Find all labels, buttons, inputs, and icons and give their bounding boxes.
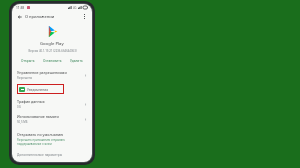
staticText: Уведомления	[27, 88, 49, 92]
button[interactable]: Остановить	[40, 58, 65, 64]
button[interactable]: Трафик данных	[12, 98, 92, 110]
staticText: Разрешить приложению открывать поддержив…	[17, 138, 87, 146]
button[interactable]: Ещё	[81, 13, 88, 20]
staticText: Остановить	[43, 59, 62, 63]
button[interactable]: Управление разрешениями	[12, 69, 92, 81]
staticText: Удалить	[70, 59, 83, 63]
button[interactable]: Использование памяти	[12, 113, 92, 125]
staticText: Разрешено	[17, 76, 33, 80]
staticText: Использование памяти	[17, 114, 59, 119]
staticText: Трафик данных	[17, 99, 45, 104]
staticText: 0 Б	[17, 105, 22, 109]
staticText: О приложении	[25, 14, 55, 19]
staticText: 50,5 МБ	[17, 120, 28, 124]
button[interactable]: Открыть	[18, 58, 38, 64]
staticText: Google Play	[40, 41, 64, 47]
button[interactable]: Удалить	[67, 58, 86, 64]
staticText: Открывать по умолчанию	[17, 132, 64, 137]
staticText: Дополнительные параметры	[17, 153, 63, 157]
button[interactable]: Уведомления	[17, 84, 64, 94]
staticText: 11:38	[16, 6, 25, 10]
staticText: Версия 40.1.19-21 (2236-664644063)	[28, 49, 77, 53]
staticText: Открыть	[21, 59, 35, 63]
button[interactable]: Открывать по умолчанию	[12, 131, 92, 147]
staticText: Управление разрешениями	[17, 70, 67, 75]
button[interactable]: Назад	[16, 13, 23, 20]
staticText: 4G	[73, 6, 77, 10]
